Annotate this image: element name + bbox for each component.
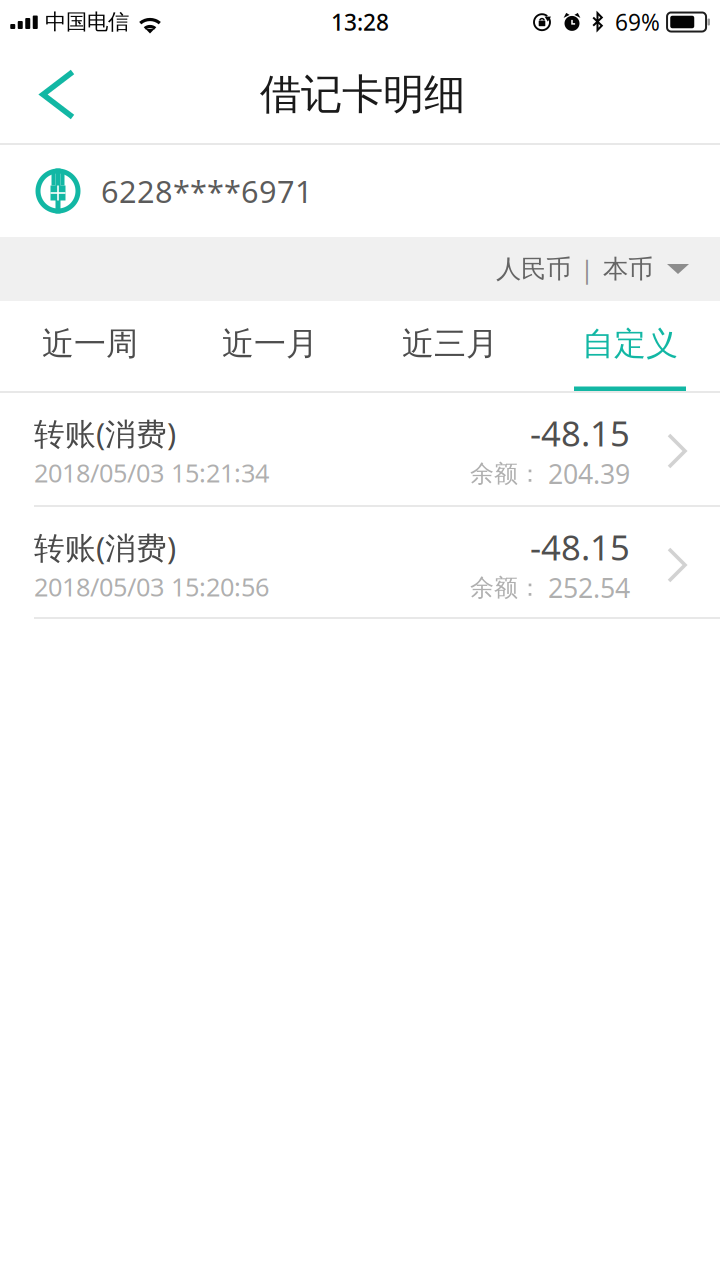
button[interactable]: 近三月 — [360, 301, 540, 393]
staticText: 6228****6971 — [101, 171, 313, 211]
staticText: 252.54 — [548, 570, 630, 605]
staticText: 余额： — [470, 573, 542, 602]
staticText: -48.15 — [530, 524, 630, 570]
staticText: 本币 — [603, 253, 653, 284]
staticText: 近三月 — [402, 324, 498, 363]
button[interactable]: 自定义 — [540, 301, 720, 393]
staticText: | — [580, 252, 594, 286]
staticText: 中国电信 — [45, 9, 129, 35]
staticText: -48.15 — [530, 410, 630, 456]
staticText: 借记卡明细 — [260, 69, 465, 120]
staticText: 2018/05/03 15:21:34 — [34, 456, 269, 489]
button[interactable]: 近一月 — [180, 301, 360, 393]
button[interactable]: 人民币 — [0, 237, 720, 301]
staticText: 近一月 — [222, 324, 318, 363]
button[interactable]: 6228****6971 — [0, 145, 720, 237]
button[interactable]: 近一周 — [0, 301, 180, 393]
staticText: 自定义 — [582, 324, 678, 363]
staticText: 204.39 — [548, 456, 630, 491]
staticText: 人民币 — [496, 253, 571, 284]
staticText: 13:28 — [331, 7, 389, 37]
button[interactable]: 转账(消费) — [0, 507, 720, 619]
staticText: 余额： — [470, 459, 542, 488]
button[interactable]: 转账(消费) — [0, 393, 720, 507]
staticText: 69% — [615, 7, 660, 37]
staticText: 近一周 — [42, 324, 138, 363]
staticText: 转账(消费) — [34, 527, 176, 568]
staticText: 2018/05/03 15:20:56 — [34, 570, 269, 603]
staticText: 转账(消费) — [34, 413, 176, 454]
button[interactable]: Back — [19, 44, 97, 145]
